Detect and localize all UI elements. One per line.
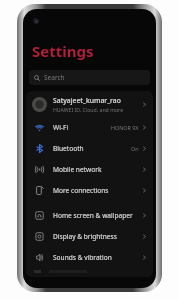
button[interactable]: Search (29, 70, 150, 85)
button[interactable]: Display & brightness (26, 226, 153, 247)
staticText: HONOR 9X (111, 124, 139, 131)
button[interactable] (26, 268, 153, 277)
staticText: Search (44, 73, 65, 82)
button[interactable]: Satyajeet_kumar_rao (26, 91, 153, 117)
staticText: Display & brightness (53, 232, 142, 241)
staticText: Settings (32, 41, 94, 61)
staticText: Wi-Fi (53, 123, 111, 132)
staticText: Home screen & wallpaper (53, 211, 142, 220)
staticText: Bluetooth (53, 144, 131, 153)
staticText: Sounds & vibration (53, 253, 142, 262)
staticText: Mobile network (53, 165, 142, 174)
staticText: Satyajeet_kumar_rao (53, 96, 121, 105)
staticText: HUAWEI ID, Cloud, and more (53, 106, 124, 113)
button[interactable]: More connections (26, 180, 153, 201)
button[interactable]: Bluetooth (26, 138, 153, 159)
button[interactable]: Wi-Fi (26, 117, 153, 138)
staticText: On (131, 145, 139, 152)
button[interactable]: Sounds & vibration (26, 247, 153, 268)
button[interactable]: Home screen & wallpaper (26, 205, 153, 226)
staticText: More connections (53, 186, 142, 195)
button[interactable]: Mobile network (26, 159, 153, 180)
